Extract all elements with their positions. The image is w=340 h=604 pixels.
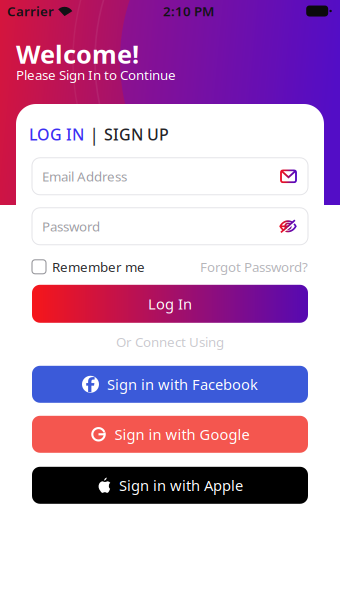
button[interactable]: Log In [32,285,308,323]
button[interactable]: Sign in with Facebook [32,366,308,403]
button[interactable]: Sign in with Google [32,416,308,453]
staticText: Forgot Password? [200,258,308,276]
staticText: Log In [148,294,192,314]
button[interactable]: Password [32,208,308,245]
button[interactable]: Remember me [32,258,145,276]
staticText: LOG IN [29,124,84,145]
button[interactable]: LOG IN [29,124,84,145]
staticText: Or Connect Using [116,333,224,351]
staticText: Please Sign In to Continue [16,66,176,84]
staticText: Sign in with Facebook [107,375,258,394]
staticText: Sign in with Apple [119,476,243,495]
staticText: Password [42,217,100,235]
staticText: 2:10 PM [163,2,214,20]
staticText: Sign in with Google [114,425,249,444]
button[interactable]: SIGN UP [104,124,169,145]
button[interactable]: Email Address [32,158,308,195]
staticText: Remember me [52,258,145,276]
staticText: | [89,122,99,147]
button[interactable]: Forgot Password? [200,258,308,276]
staticText: Carrier [7,2,54,20]
staticText: SIGN UP [104,124,169,145]
staticText: Welcome! [16,37,139,71]
button[interactable]: Sign in with Apple [32,467,308,504]
staticText: Email Address [42,167,127,185]
